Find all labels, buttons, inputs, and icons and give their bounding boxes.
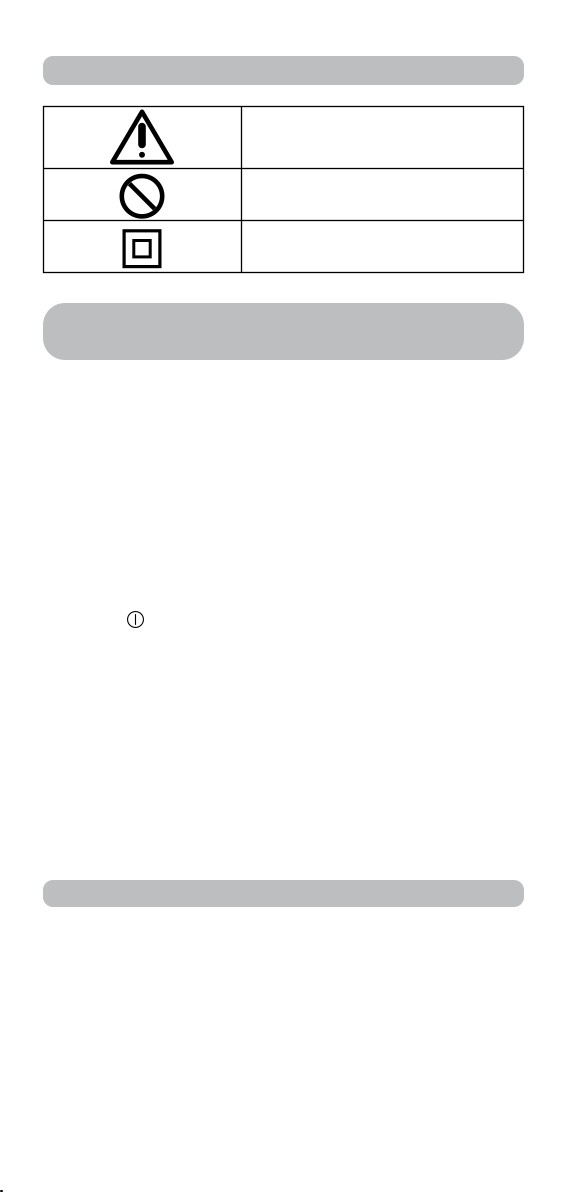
button[interactable]: Prohibited	[43, 169, 524, 220]
button[interactable]: Class II double insulated	[43, 221, 524, 273]
button[interactable]: Warning	[43, 106, 524, 168]
